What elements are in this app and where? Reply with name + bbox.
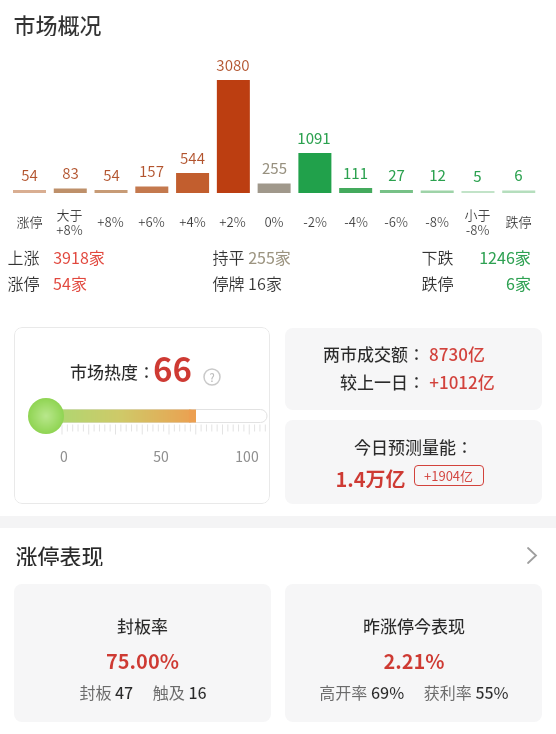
- staticText: 停牌: [212, 271, 245, 293]
- staticText: -8%: [425, 212, 449, 231]
- staticText: +4%: [179, 212, 206, 231]
- staticText: 75.00%: [106, 646, 179, 670]
- staticText: 跌停: [505, 212, 532, 231]
- staticText: 83: [62, 162, 79, 184]
- staticText: 54家: [53, 271, 87, 293]
- staticText: 544: [180, 147, 205, 169]
- staticText: 3918家: [53, 245, 105, 267]
- staticText: 0%: [264, 212, 284, 231]
- staticText: ?: [209, 369, 215, 385]
- staticText: 较上一日：: [340, 369, 425, 391]
- staticText: +8%: [97, 212, 124, 231]
- staticText: 6家: [506, 271, 531, 293]
- staticText: 100: [235, 446, 259, 462]
- staticText: 16家: [248, 271, 282, 293]
- staticText: 1.4万亿: [335, 464, 406, 488]
- staticText: -2%: [303, 212, 327, 231]
- staticText: 小于 -8%: [464, 205, 491, 237]
- staticText: 跌停: [421, 271, 454, 293]
- staticText: 市场概况: [13, 8, 102, 36]
- staticText: +6%: [138, 212, 165, 231]
- staticText: +2%: [219, 212, 246, 231]
- staticText: -4%: [344, 212, 368, 231]
- staticText: 12: [429, 164, 446, 186]
- staticText: 封板 47 触及 16: [79, 680, 207, 702]
- staticText: 大于 +8%: [56, 205, 83, 237]
- staticText: 两市成交额：: [323, 341, 425, 363]
- staticText: 157: [139, 160, 164, 182]
- staticText: 1246家: [479, 245, 531, 267]
- staticText: 高开率 69% 获利率 55%: [319, 680, 509, 702]
- staticText: +1012亿: [429, 369, 495, 391]
- staticText: 2.21%: [383, 646, 445, 670]
- staticText: -6%: [384, 212, 408, 231]
- staticText: 上涨: [7, 245, 40, 267]
- staticText: 255: [262, 157, 287, 179]
- staticText: 27: [388, 164, 405, 186]
- staticText: 今日预测量能：: [354, 434, 473, 456]
- staticText: 8730亿: [429, 341, 485, 363]
- staticText: 封板率: [117, 613, 168, 635]
- staticText: 昨涨停今表现: [363, 613, 465, 635]
- staticText: 市场热度：: [70, 359, 155, 383]
- staticText: 涨停: [7, 271, 40, 293]
- staticText: 5: [473, 165, 482, 187]
- staticText: 3080: [216, 54, 250, 76]
- staticText: +1904亿: [424, 466, 474, 485]
- staticText: 66: [153, 344, 192, 392]
- staticText: 54: [21, 164, 38, 186]
- staticText: 下跌: [421, 245, 454, 267]
- staticText: 涨停: [16, 212, 43, 231]
- staticText: 54: [103, 164, 120, 186]
- staticText: 0: [60, 446, 68, 462]
- staticText: 111: [343, 162, 368, 184]
- staticText: 50: [153, 446, 169, 462]
- staticText: 255家: [248, 245, 291, 267]
- staticText: 6: [514, 164, 523, 186]
- staticText: 涨停表现: [15, 539, 104, 566]
- staticText: 1091: [297, 127, 331, 149]
- staticText: 持平: [212, 245, 245, 267]
